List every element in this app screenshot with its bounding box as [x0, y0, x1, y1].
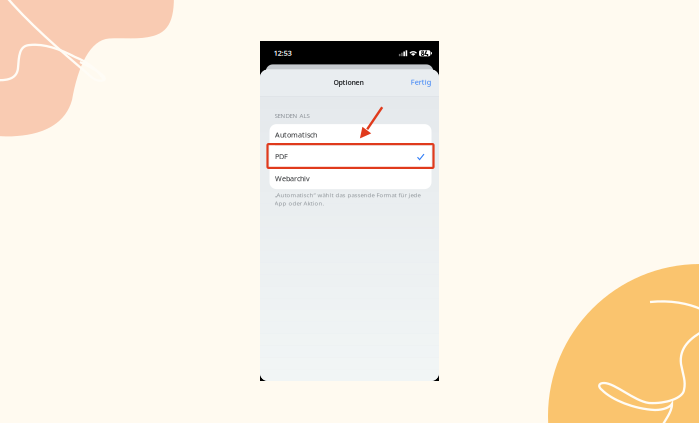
staticText: Webarchiv: [275, 173, 310, 183]
button[interactable]: Fertig: [404, 71, 439, 92]
button[interactable]: PDF: [269, 146, 431, 168]
staticText: Optionen: [333, 77, 363, 87]
staticText: „Automatisch“ wählt das passende Format …: [275, 191, 421, 207]
button[interactable]: Automatisch: [269, 124, 431, 146]
staticText: SENDEN ALS: [275, 111, 310, 120]
button[interactable]: Webarchiv: [269, 168, 431, 189]
staticText: Fertig: [411, 77, 432, 87]
staticText: PDF: [275, 152, 288, 161]
staticText: 12:53: [274, 48, 292, 58]
staticText: Automatisch: [275, 130, 317, 140]
